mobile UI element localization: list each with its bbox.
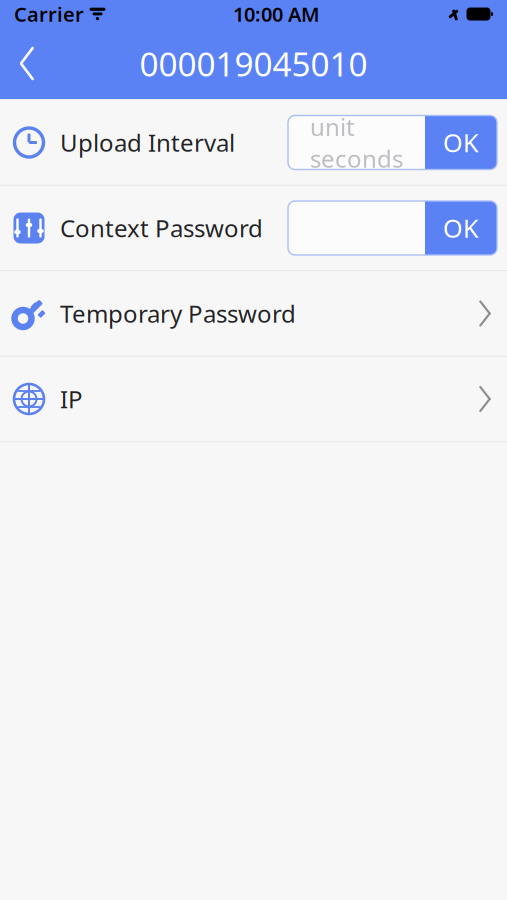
staticText: OK xyxy=(443,126,479,159)
button[interactable]: IP xyxy=(0,357,507,442)
staticText: Upload Interval xyxy=(60,127,235,158)
staticText: 000019045010 xyxy=(139,41,367,86)
button[interactable]: OK xyxy=(425,201,497,255)
staticText: IP xyxy=(60,383,83,415)
button[interactable]: Back xyxy=(0,28,54,99)
button[interactable]: OK xyxy=(425,115,497,169)
staticText: unit seconds xyxy=(310,111,403,174)
button[interactable]: Temporary Password xyxy=(0,271,507,357)
staticText: Carrier xyxy=(14,1,84,27)
staticText: Context Password xyxy=(60,212,263,244)
staticText: 10:00 AM xyxy=(233,1,320,27)
staticText: Temporary Password xyxy=(60,298,296,329)
staticText: OK xyxy=(443,211,479,245)
